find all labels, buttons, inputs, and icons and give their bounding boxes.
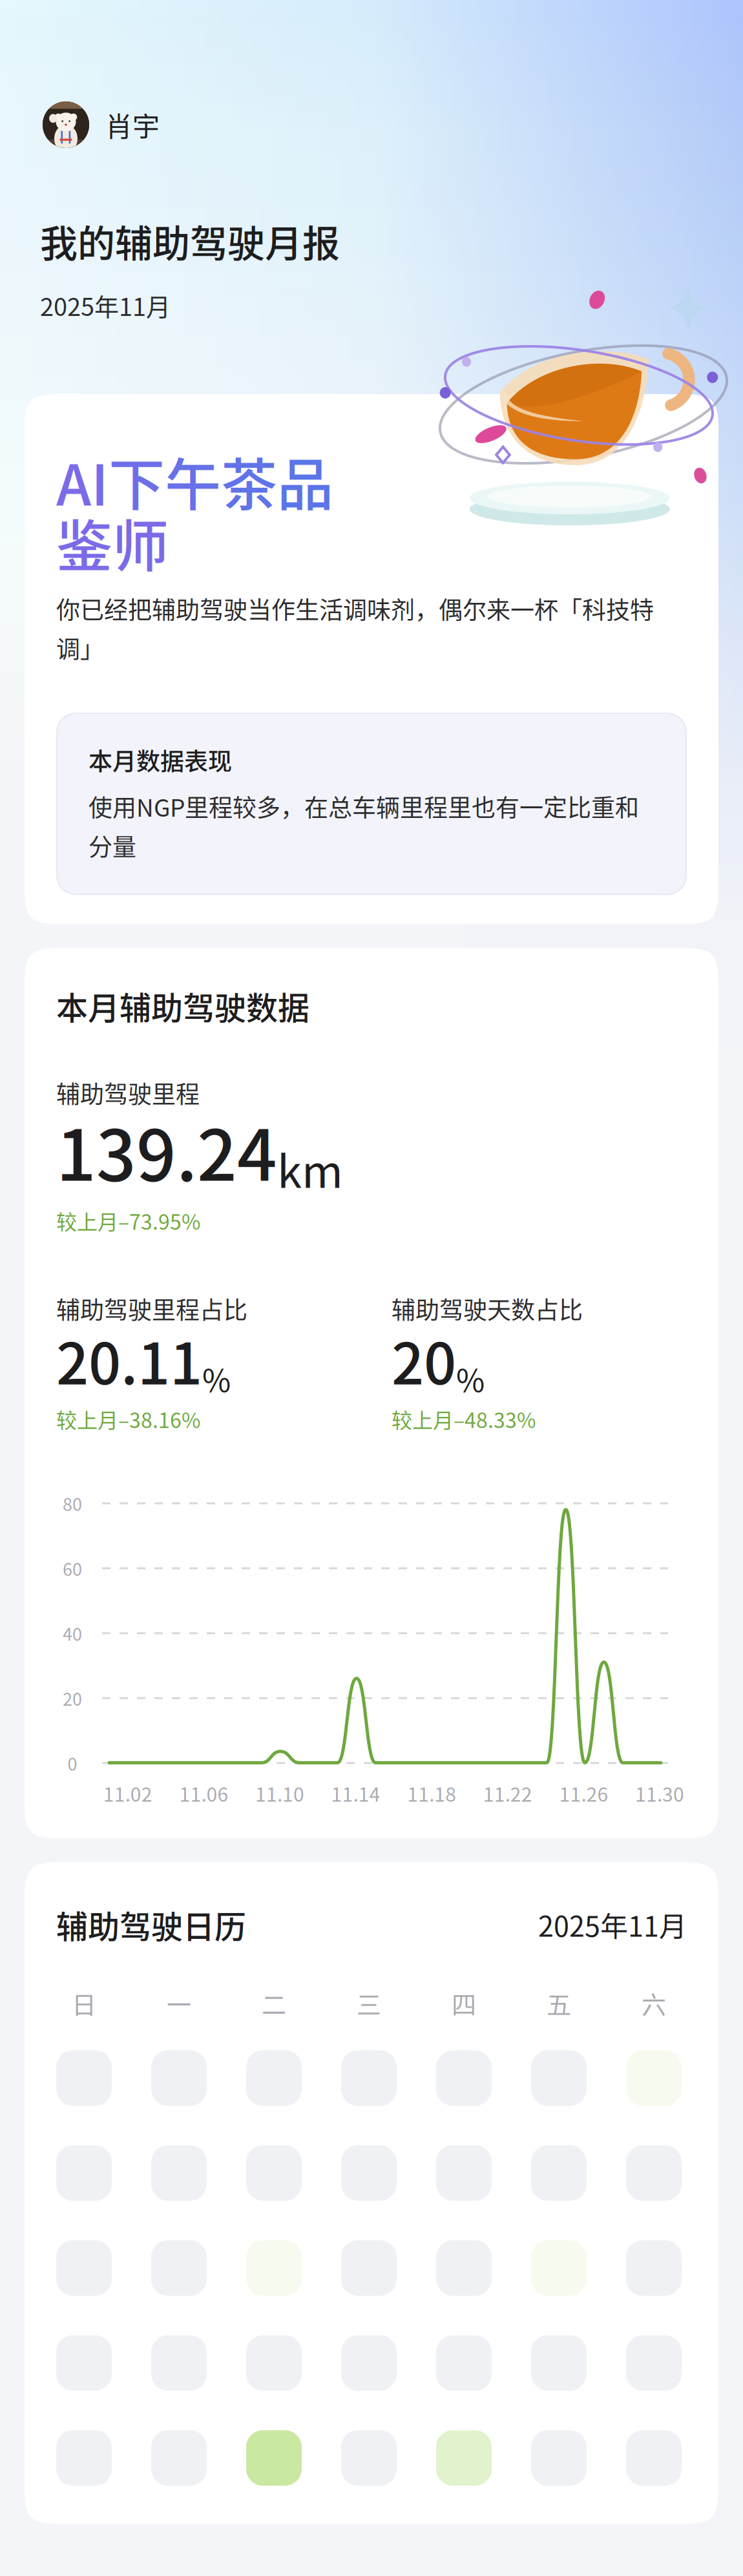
staticText: 较上月–48.33% [392,1404,536,1434]
staticText: 0 [68,1750,77,1776]
staticText: km [277,1136,343,1201]
staticText: 较上月–73.95% [56,1206,200,1236]
staticText: 11.02 [103,1779,152,1807]
staticText: 午 [165,440,221,522]
staticText: 20.11 [56,1318,202,1401]
staticText: 11.10 [255,1779,304,1807]
staticText: 日 [72,1985,96,2021]
staticText: 20 [392,1318,456,1401]
staticText: % [202,1356,231,1401]
staticText: 你已经把辅助驾驶当作生活调味剂，偶尔来一杯「科技特调」 [56,591,654,665]
staticText: 肖宇 [105,105,160,144]
staticText: 80 [63,1491,82,1516]
staticText: 60 [63,1556,82,1581]
staticText: 辅助驾驶里程 [56,1075,200,1110]
staticText: 11.14 [331,1779,380,1807]
staticText: 11.18 [407,1779,456,1807]
staticText: 下 [109,440,165,522]
staticText: 11.30 [635,1779,684,1807]
staticText: 三 [357,1985,381,2021]
staticText: 四 [452,1985,476,2021]
staticText: 139.24 [56,1100,277,1201]
staticText: 我的辅助驾驶月报 [40,214,340,268]
staticText: 较上月–38.16% [56,1404,200,1434]
staticText: 鉴师 [56,502,169,583]
staticText: 2025年11月 [40,288,171,323]
button[interactable]: 肖宇 [0,101,160,148]
staticText: A [56,440,91,522]
staticText: 11.26 [559,1779,608,1807]
staticText: 二 [262,1985,286,2021]
staticText: 品 [277,440,333,522]
staticText: 11.22 [483,1779,532,1807]
staticText: 使用NGP里程较多，在总车辆里程里也有一定比重和分量 [89,789,639,863]
staticText: I [91,440,109,522]
staticText: 一 [167,1985,191,2021]
staticText: 辅助驾驶里程占比 [56,1291,247,1326]
staticText: 辅助驾驶天数占比 [392,1291,583,1326]
staticText: 六 [642,1985,666,2021]
staticText: 2025年11月 [538,1905,687,1945]
staticText: 本月辅助驾驶数据 [56,983,309,1029]
staticText: % [456,1356,485,1401]
staticText: 20 [63,1686,82,1711]
staticText: 40 [63,1621,82,1646]
staticText: 五 [547,1985,571,2021]
staticText: 11.06 [179,1779,228,1807]
staticText: 辅助驾驶日历 [56,1902,246,1948]
staticText: 本月数据表现 [89,743,232,777]
staticText: 茶 [221,440,277,522]
